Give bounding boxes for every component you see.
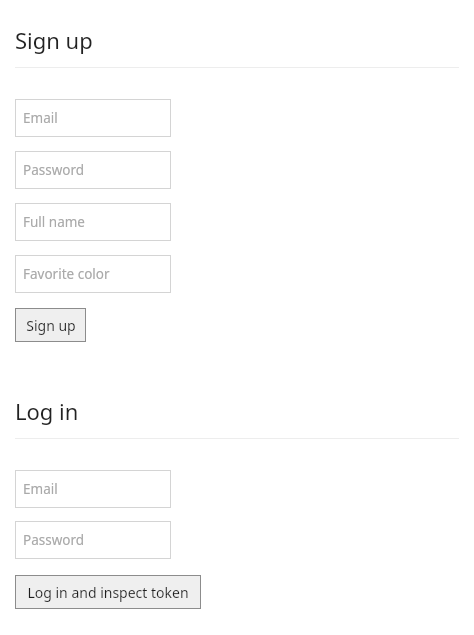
staticText: Sign up xyxy=(26,316,76,335)
button[interactable]: Email xyxy=(15,99,171,137)
staticText: Sign up xyxy=(15,25,93,55)
button[interactable]: Log in and inspect token xyxy=(15,575,201,609)
button[interactable]: Full name xyxy=(15,203,171,241)
button[interactable]: Sign up xyxy=(15,308,86,342)
staticText: Log in and inspect token xyxy=(27,583,189,602)
staticText: Favorite color xyxy=(23,265,110,283)
staticText: Password xyxy=(23,161,85,179)
staticText: Full name xyxy=(23,213,85,231)
staticText: Email xyxy=(23,480,58,498)
button[interactable]: Password xyxy=(15,521,171,559)
staticText: Log in xyxy=(15,396,79,426)
staticText: Password xyxy=(23,531,85,549)
button[interactable]: Password xyxy=(15,151,171,189)
staticText: Email xyxy=(23,109,58,127)
button[interactable]: Email xyxy=(15,470,171,508)
button[interactable]: Favorite color xyxy=(15,255,171,293)
